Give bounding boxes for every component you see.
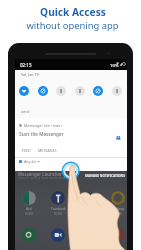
staticText: FEED [22, 148, 31, 153]
staticText: Facebook [51, 207, 66, 211]
button[interactable]: Quick setting 2 [38, 86, 48, 96]
staticText: Sat, Jan 19 [21, 72, 39, 77]
button[interactable]: App icon [22, 191, 36, 205]
button[interactable]: Quick setting 5 [93, 86, 103, 96]
staticText: (X XX) [114, 212, 122, 216]
staticText: Launch quickly from notification [18, 176, 67, 180]
staticText: Any.do [24, 159, 36, 164]
button[interactable]: App icon [51, 191, 65, 205]
button[interactable]: App icon [22, 228, 36, 242]
staticText: Messenger Lite • now • [24, 123, 63, 128]
staticText: MESSAGES [38, 148, 57, 153]
staticText: (X XX) [54, 212, 62, 216]
button[interactable]: App icon [81, 191, 95, 205]
button[interactable]: Quick setting 4 [75, 86, 85, 96]
staticText: 10% [110, 62, 119, 68]
staticText: without opening app [26, 19, 119, 32]
staticText: Atul [26, 207, 32, 211]
staticText: Quick Access [40, 5, 106, 19]
staticText: Start the Messenger [19, 131, 64, 137]
button[interactable]: App icon [111, 191, 125, 205]
button[interactable]: Quick setting 1 [19, 86, 29, 96]
button[interactable]: App icon [51, 228, 65, 242]
button[interactable]: Quick setting 3 [56, 86, 66, 96]
staticText: amol [21, 109, 30, 114]
button[interactable]: App icon [111, 228, 125, 242]
staticText: 02:15 [20, 62, 32, 68]
staticText: Sandeep [111, 207, 125, 211]
staticText: MANAGE NOTIFICATIONS [85, 174, 125, 178]
staticText: Messenger Launcher [18, 171, 62, 177]
button[interactable]: Quick setting 6 [112, 86, 122, 96]
staticText: (X XX) [25, 212, 33, 216]
